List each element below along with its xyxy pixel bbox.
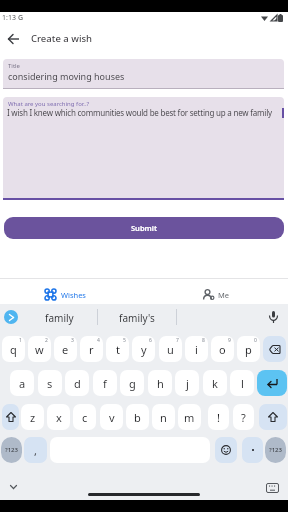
button[interactable]: t bbox=[106, 336, 129, 362]
button[interactable]: family's bbox=[98, 304, 176, 331]
button[interactable]: o bbox=[211, 336, 234, 362]
button[interactable]: y bbox=[132, 336, 155, 362]
button[interactable]: z bbox=[21, 404, 44, 430]
staticText: G bbox=[18, 13, 24, 23]
button[interactable]: e bbox=[54, 336, 77, 362]
staticText: r bbox=[89, 342, 94, 357]
staticText: 0 bbox=[254, 337, 257, 344]
staticText: b bbox=[134, 410, 141, 425]
button[interactable]: q bbox=[2, 336, 25, 362]
button[interactable]: r bbox=[80, 336, 103, 362]
button[interactable]: Title bbox=[3, 59, 284, 88]
button[interactable]: Me bbox=[144, 284, 288, 305]
staticText: 5 bbox=[123, 337, 126, 344]
staticText: q bbox=[10, 342, 17, 357]
button[interactable] bbox=[242, 437, 263, 463]
staticText: family's bbox=[119, 311, 155, 325]
staticText: o bbox=[219, 342, 226, 357]
staticText: k bbox=[212, 376, 218, 391]
button[interactable]: w bbox=[28, 336, 51, 362]
button[interactable] bbox=[4, 31, 22, 47]
button[interactable]: b bbox=[126, 404, 149, 430]
button[interactable]: u bbox=[159, 336, 182, 362]
staticText: p bbox=[245, 342, 252, 357]
staticText: Create a wish bbox=[31, 32, 93, 45]
staticText: Wishes bbox=[61, 290, 86, 300]
staticText: ?123 bbox=[269, 446, 282, 454]
staticText: Title bbox=[8, 62, 20, 70]
button[interactable]: g bbox=[120, 370, 144, 396]
staticText: 2 bbox=[45, 337, 48, 344]
staticText: family bbox=[45, 311, 74, 325]
staticText: 3 bbox=[71, 337, 74, 344]
staticText: x bbox=[56, 410, 62, 425]
button[interactable]: family bbox=[22, 304, 97, 331]
staticText: c bbox=[82, 410, 88, 425]
button[interactable] bbox=[2, 404, 19, 430]
staticText: , bbox=[34, 443, 37, 458]
button[interactable]: n bbox=[152, 404, 175, 430]
button[interactable]: d bbox=[65, 370, 89, 396]
staticText: ?123 bbox=[5, 446, 18, 454]
staticText: v bbox=[109, 410, 115, 425]
button[interactable]: j bbox=[175, 370, 199, 396]
staticText: m bbox=[184, 410, 195, 425]
button[interactable]: f bbox=[93, 370, 117, 396]
staticText: Submit bbox=[131, 223, 157, 233]
staticText: d bbox=[74, 376, 81, 391]
staticText: considering moving houses bbox=[8, 70, 125, 82]
button[interactable]: i bbox=[185, 336, 208, 362]
staticText: w bbox=[35, 342, 44, 357]
staticText: 9 bbox=[228, 337, 231, 344]
staticText: 6 bbox=[149, 337, 152, 344]
button[interactable]: m bbox=[178, 404, 201, 430]
button[interactable]: , bbox=[24, 437, 47, 463]
staticText: i bbox=[195, 342, 198, 357]
button[interactable]: s bbox=[38, 370, 62, 396]
staticText: u bbox=[167, 342, 174, 357]
button[interactable] bbox=[264, 481, 281, 494]
staticText: 4 bbox=[97, 337, 100, 344]
button[interactable]: p bbox=[237, 336, 260, 362]
button[interactable]: What are you searching for..? bbox=[3, 97, 284, 198]
staticText: j bbox=[186, 376, 189, 391]
button[interactable]: a bbox=[10, 370, 34, 396]
button[interactable] bbox=[259, 404, 287, 430]
staticText: t bbox=[116, 342, 120, 357]
staticText: ? bbox=[241, 410, 246, 425]
staticText: 1:13 bbox=[2, 13, 16, 23]
staticText: n bbox=[160, 410, 167, 425]
staticText: 1 bbox=[19, 337, 22, 344]
staticText: f bbox=[103, 376, 107, 391]
button[interactable]: k bbox=[203, 370, 227, 396]
staticText: 7 bbox=[176, 337, 179, 344]
button[interactable] bbox=[257, 370, 287, 396]
staticText: h bbox=[157, 376, 164, 391]
staticText: What are you searching for..? bbox=[8, 100, 90, 108]
staticText: I wish I knew which communities would be… bbox=[7, 107, 283, 118]
staticText: 8 bbox=[202, 337, 205, 344]
staticText: ! bbox=[217, 410, 220, 425]
button[interactable]: l bbox=[230, 370, 254, 396]
staticText: a bbox=[19, 376, 26, 391]
button[interactable]: ?123 bbox=[1, 437, 22, 463]
button[interactable]: ?123 bbox=[265, 437, 286, 463]
button[interactable]: ? bbox=[233, 404, 254, 430]
button[interactable]: c bbox=[73, 404, 96, 430]
staticText: z bbox=[30, 410, 36, 425]
button[interactable]: h bbox=[148, 370, 172, 396]
button[interactable]: Submit bbox=[4, 217, 284, 239]
button[interactable]: v bbox=[100, 404, 123, 430]
button[interactable] bbox=[4, 310, 18, 324]
button[interactable] bbox=[263, 336, 286, 362]
button[interactable]: ! bbox=[208, 404, 229, 430]
button[interactable] bbox=[5, 480, 21, 494]
staticText: Me bbox=[218, 290, 230, 300]
button[interactable]: x bbox=[47, 404, 70, 430]
staticText: g bbox=[129, 376, 136, 391]
button[interactable] bbox=[264, 308, 282, 326]
button[interactable] bbox=[215, 437, 237, 463]
staticText: l bbox=[241, 376, 244, 391]
button[interactable]: Wishes bbox=[0, 284, 144, 305]
